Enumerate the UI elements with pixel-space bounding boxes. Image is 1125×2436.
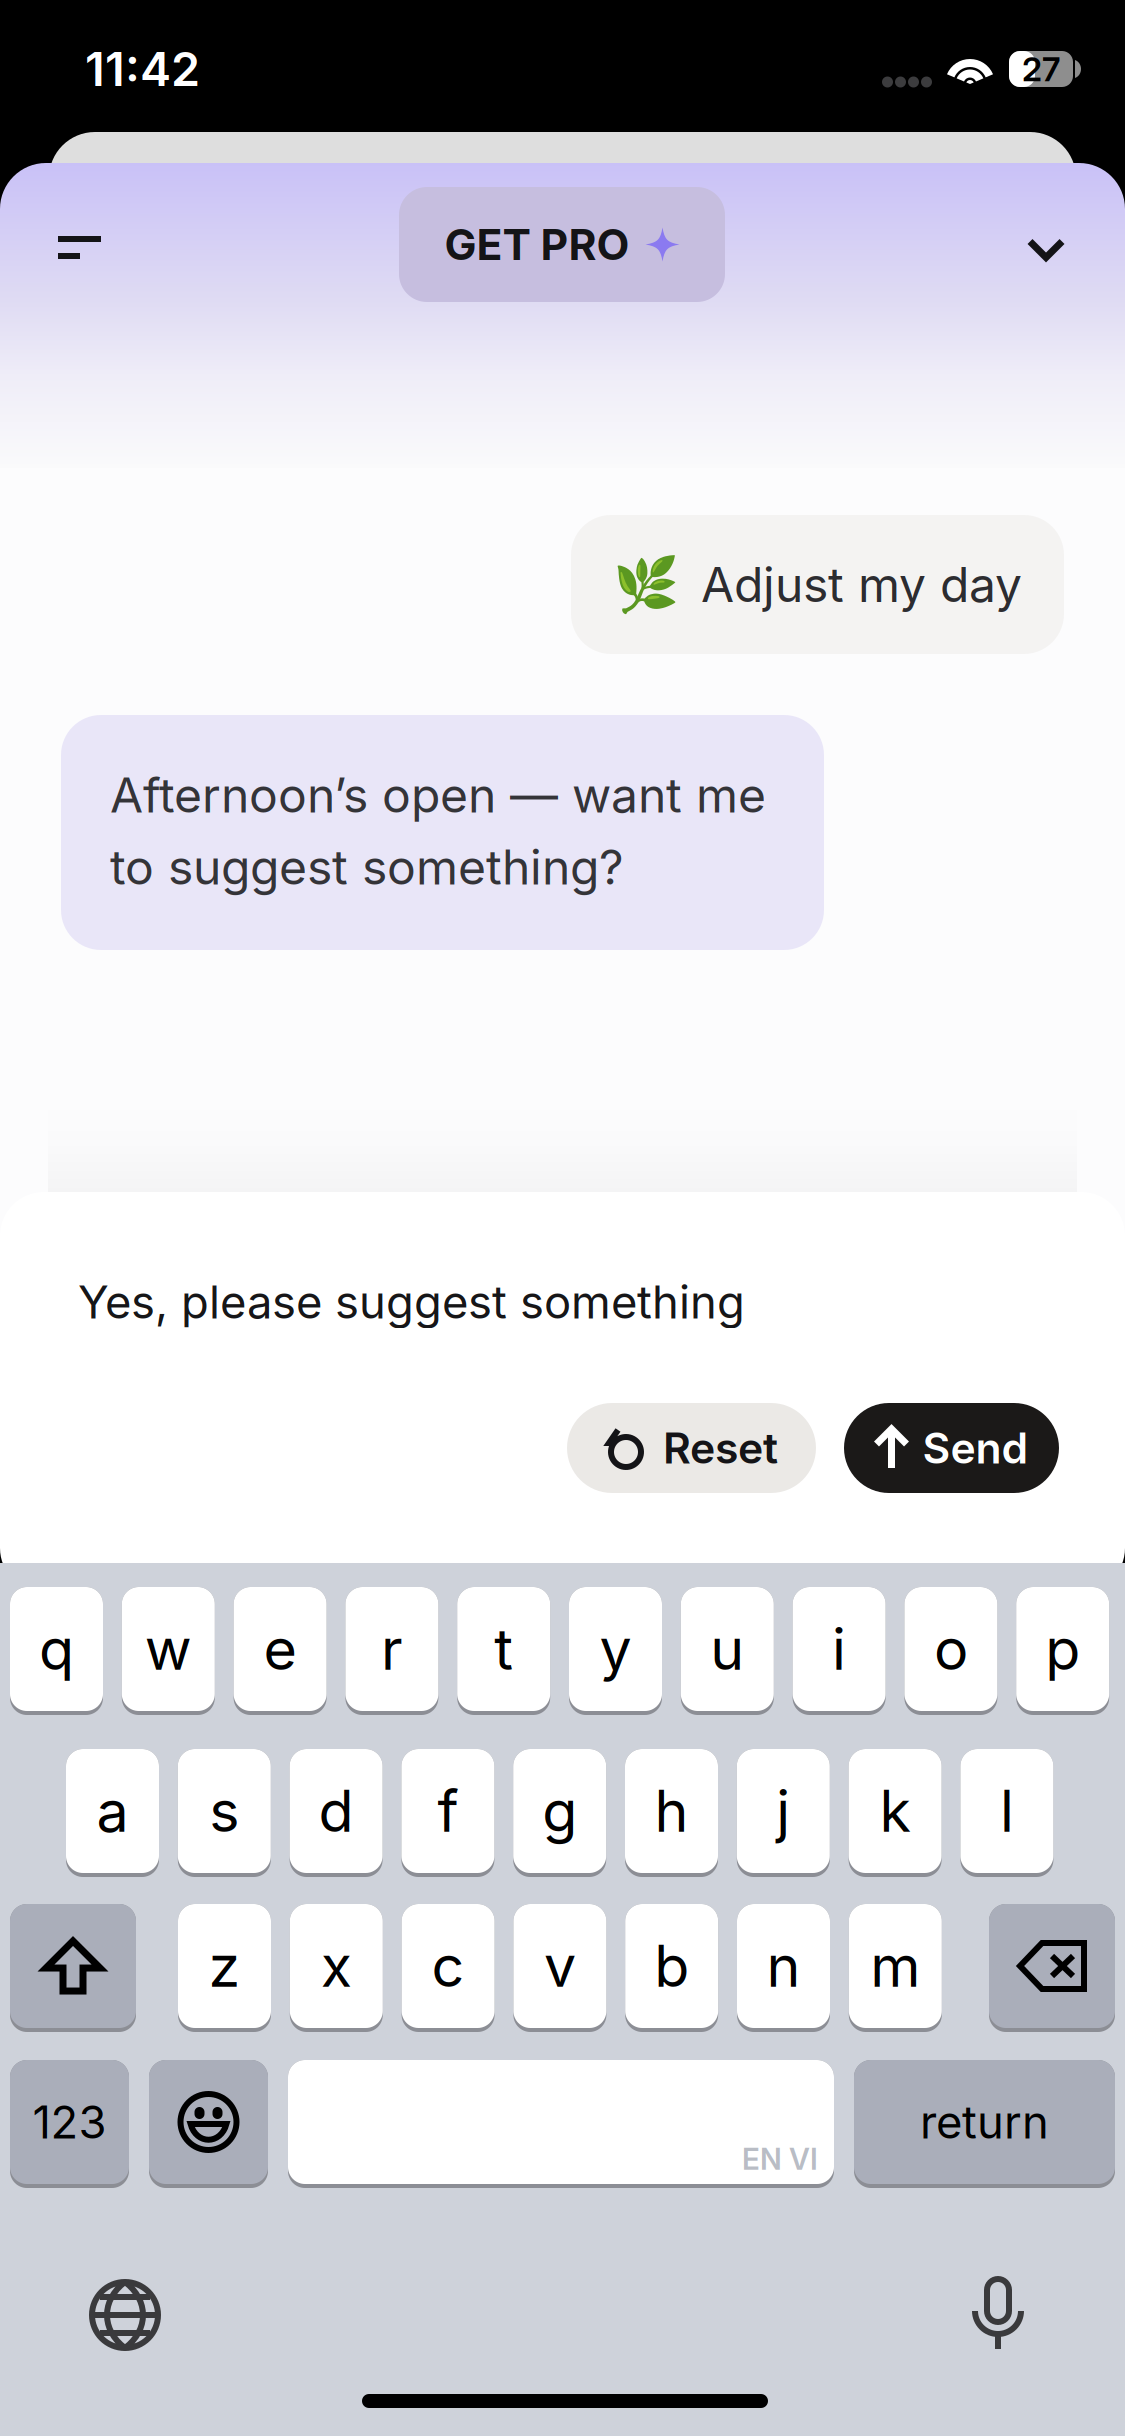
button[interactable]: s — [178, 1749, 271, 1877]
staticText: f — [437, 1776, 458, 1846]
button[interactable]: k — [849, 1749, 942, 1877]
staticText: k — [880, 1776, 911, 1846]
staticText: o — [934, 1614, 968, 1684]
button[interactable]: Reset — [567, 1403, 816, 1493]
button[interactable]: b — [625, 1904, 718, 2032]
button[interactable] — [288, 2060, 834, 2188]
button[interactable]: Change keyboard — [89, 2279, 161, 2351]
staticText: e — [264, 1614, 297, 1684]
staticText: s — [209, 1776, 239, 1846]
staticText: GET PRO — [444, 219, 629, 270]
staticText: to suggest something? — [110, 838, 624, 896]
staticText: d — [319, 1776, 354, 1846]
button[interactable]: Menu — [14, 190, 142, 305]
button[interactable]: m — [849, 1904, 942, 2032]
staticText: Yes, please suggest something — [78, 1275, 745, 1329]
button[interactable]: l — [960, 1749, 1053, 1877]
staticText: w — [145, 1614, 192, 1684]
staticText: c — [432, 1931, 465, 2001]
staticText: 🌿 — [613, 553, 679, 616]
button[interactable]: j — [737, 1749, 830, 1877]
staticText: 27 — [1022, 49, 1060, 89]
button[interactable]: e — [234, 1587, 327, 1715]
staticText: Adjust my day — [701, 555, 1022, 614]
button[interactable]: o — [904, 1587, 997, 1715]
staticText: a — [96, 1776, 128, 1846]
staticText: z — [208, 1931, 240, 2001]
staticText: b — [654, 1931, 689, 2001]
staticText: l — [1000, 1776, 1014, 1846]
button[interactable]: Emoji — [149, 2060, 268, 2188]
staticText: p — [1045, 1614, 1080, 1684]
staticText: 11:42 — [85, 41, 200, 97]
button[interactable]: Dictate — [964, 2273, 1034, 2353]
button[interactable]: w — [122, 1587, 215, 1715]
button[interactable]: Delete — [989, 1904, 1115, 2032]
button[interactable]: u — [681, 1587, 774, 1715]
button[interactable]: h — [625, 1749, 718, 1877]
button[interactable]: Space — [288, 2060, 834, 2188]
button[interactable]: Collapse — [987, 192, 1105, 307]
button[interactable]: x — [290, 1904, 383, 2032]
staticText: 123 — [32, 2095, 106, 2149]
staticText: j — [776, 1776, 790, 1846]
staticText: i — [832, 1614, 846, 1684]
button[interactable]: v — [513, 1904, 606, 2032]
staticText: Reset — [663, 1422, 778, 1474]
button[interactable]: y — [569, 1587, 662, 1715]
staticText: Send — [922, 1422, 1028, 1474]
button[interactable]: t — [457, 1587, 550, 1715]
button[interactable]: Send — [844, 1403, 1059, 1493]
staticText: r — [381, 1614, 403, 1684]
staticText: x — [321, 1931, 352, 2001]
staticText: h — [654, 1776, 688, 1846]
staticText: v — [544, 1931, 576, 2001]
staticText: t — [494, 1614, 513, 1684]
button[interactable]: z — [178, 1904, 271, 2032]
staticText: n — [766, 1931, 800, 2001]
button[interactable]: g — [513, 1749, 606, 1877]
button[interactable]: f — [401, 1749, 494, 1877]
button[interactable]: Shift — [10, 1904, 136, 2032]
staticText: q — [39, 1614, 74, 1684]
button[interactable]: n — [737, 1904, 830, 2032]
button[interactable]: q — [10, 1587, 103, 1715]
button[interactable]: p — [1016, 1587, 1109, 1715]
button[interactable]: return — [854, 2060, 1115, 2188]
staticText: EN VI — [742, 2141, 818, 2177]
button[interactable]: r — [345, 1587, 438, 1715]
staticText: y — [599, 1614, 631, 1684]
staticText: Afternoon’s open — want me — [110, 766, 766, 824]
button[interactable]: GET PRO — [399, 187, 725, 302]
button[interactable]: i — [793, 1587, 886, 1715]
staticText: u — [710, 1614, 744, 1684]
button[interactable]: a — [66, 1749, 159, 1877]
staticText: return — [920, 2095, 1049, 2149]
button[interactable]: 123 — [10, 2060, 129, 2188]
button[interactable]: c — [402, 1904, 495, 2032]
staticText: g — [542, 1776, 577, 1846]
staticText: m — [870, 1931, 920, 2001]
button[interactable]: d — [290, 1749, 383, 1877]
